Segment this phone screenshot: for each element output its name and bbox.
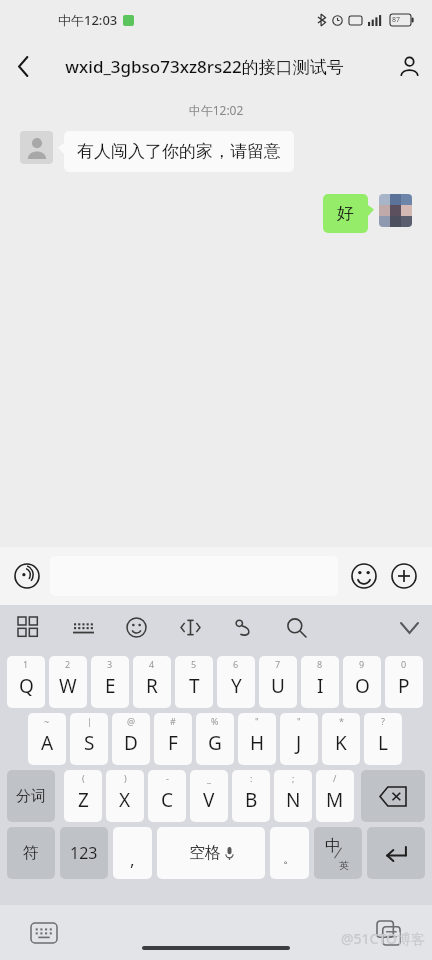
button[interactable]: More [384, 556, 424, 596]
staticText: @51CTO博客 [341, 929, 426, 948]
staticText: 英 [339, 859, 349, 872]
button[interactable]: Key [113, 827, 152, 879]
button[interactable]: Emoji [116, 605, 156, 650]
staticText: Z [78, 787, 89, 813]
staticText: # [170, 715, 176, 727]
staticText: 3 [107, 658, 113, 670]
button[interactable]: : [232, 770, 270, 822]
button[interactable]: Key [361, 770, 425, 822]
button[interactable]: @ [112, 713, 150, 765]
button[interactable]: Link [223, 605, 263, 650]
button[interactable]: Recents [374, 918, 404, 948]
button[interactable]: % [196, 713, 234, 765]
button[interactable]: * [322, 713, 360, 765]
button[interactable] [20, 131, 53, 164]
staticText: J [296, 730, 302, 756]
staticText: ? [381, 715, 385, 727]
button[interactable]: 2 [49, 656, 87, 708]
staticText: Y [231, 673, 242, 699]
button[interactable]: 3 [91, 656, 129, 708]
button[interactable]: - [148, 770, 186, 822]
staticText: wxid_3gbso73xz8rs22的接口测试号 [65, 55, 344, 78]
staticText: @ [127, 715, 136, 727]
button[interactable]: " [280, 713, 318, 765]
button[interactable]: Emoji [344, 556, 384, 596]
staticText: 6 [233, 658, 239, 670]
staticText: " [255, 715, 259, 727]
button[interactable]: 1 [7, 656, 45, 708]
button[interactable]: 好 [323, 194, 368, 233]
staticText: : [250, 772, 253, 784]
button[interactable]: ) [106, 770, 144, 822]
staticText: M [326, 787, 344, 813]
staticText: 中 [325, 836, 341, 856]
button[interactable]: 符 [7, 827, 55, 879]
button[interactable]: Contact info [386, 40, 432, 92]
button[interactable]: 6 [217, 656, 255, 708]
button[interactable]: Key [314, 827, 362, 879]
button[interactable]: ( [64, 770, 102, 822]
staticText: 1 [23, 658, 29, 670]
staticText: 符 [23, 843, 39, 863]
button[interactable]: 4 [133, 656, 171, 708]
staticText: 2 [65, 658, 71, 670]
button[interactable]: ; [274, 770, 312, 822]
staticText: 有人闯入了你的家，请留意 [77, 141, 281, 162]
button[interactable]: / [316, 770, 354, 822]
button[interactable]: Switch keyboard [28, 920, 60, 946]
button[interactable]: # [154, 713, 192, 765]
staticText: 123 [70, 842, 98, 864]
staticText: " [297, 715, 301, 727]
staticText: 空格 [189, 843, 221, 863]
button[interactable]: ~ [28, 713, 66, 765]
staticText: % [211, 715, 219, 727]
staticText: O [355, 673, 370, 699]
button[interactable]: 8 [301, 656, 339, 708]
button[interactable]: 9 [343, 656, 381, 708]
button[interactable]: | [70, 713, 108, 765]
button[interactable]: " [238, 713, 276, 765]
staticText: 87 [392, 15, 401, 25]
staticText: 9 [359, 658, 365, 670]
staticText: K [335, 730, 347, 756]
staticText: ) [124, 772, 127, 784]
button[interactable]: 123 [60, 827, 108, 879]
staticText: P [398, 673, 410, 699]
staticText: D [124, 730, 138, 756]
staticText: ; [292, 772, 295, 784]
staticText: 8 [317, 658, 323, 670]
button[interactable]: Keyboard [63, 605, 103, 650]
button[interactable]: Hide keyboard [386, 605, 432, 650]
staticText: 中午12:02 [0, 102, 432, 118]
button[interactable]: Voice input [8, 557, 46, 595]
button[interactable]: Search [276, 605, 316, 650]
button[interactable]: Key [367, 827, 425, 879]
staticText: - [166, 772, 169, 784]
button[interactable]: _ [190, 770, 228, 822]
staticText: 分词 [16, 787, 46, 806]
button[interactable]: 5 [175, 656, 213, 708]
button[interactable] [379, 194, 412, 227]
staticText: / [333, 772, 337, 784]
button[interactable]: 0 [385, 656, 423, 708]
staticText: ( [82, 772, 85, 784]
button[interactable]: 有人闯入了你的家，请留意 [64, 131, 294, 172]
staticText: W [59, 673, 77, 699]
button[interactable]: 分词 [7, 770, 55, 822]
button[interactable]: ? [364, 713, 402, 765]
button[interactable]: Cursor [170, 605, 210, 650]
button[interactable]: Back [0, 40, 46, 92]
staticText: U [271, 673, 285, 699]
staticText: | [87, 715, 92, 727]
button[interactable]: Key [157, 827, 265, 879]
staticText: X [119, 787, 131, 813]
button[interactable]: 7 [259, 656, 297, 708]
staticText: E [105, 673, 116, 699]
button[interactable]: Key [270, 827, 309, 879]
staticText: _ [207, 772, 211, 784]
staticText: 好 [337, 203, 354, 224]
button[interactable]: Grid [8, 605, 48, 650]
staticText: S [84, 730, 95, 756]
staticText: 中午12:03 [58, 11, 118, 29]
